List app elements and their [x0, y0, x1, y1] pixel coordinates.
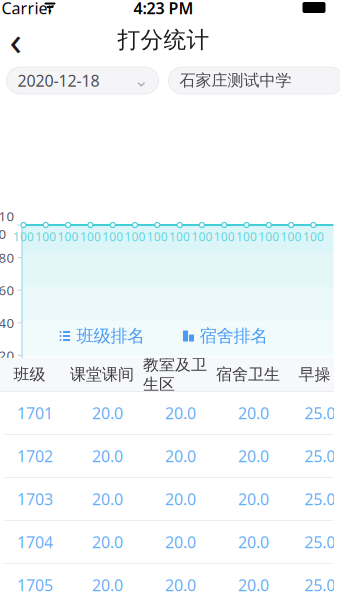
- staticText: 25.0: [304, 531, 335, 553]
- staticText: 1902: [252, 396, 273, 428]
- staticText: 25.0: [304, 488, 335, 510]
- staticText: 班级排名: [76, 325, 144, 347]
- staticText: 1804: [185, 386, 206, 418]
- staticText: 石家庄测试中学: [179, 71, 291, 90]
- staticText: 100: [13, 228, 34, 244]
- staticText: 80: [0, 249, 14, 266]
- staticText: 4:23 PM: [133, 0, 193, 19]
- staticText: 1705: [96, 386, 117, 418]
- staticText: 20.0: [238, 445, 269, 467]
- button[interactable]: 1704: [0, 521, 339, 564]
- button[interactable]: 1705: [0, 564, 339, 604]
- staticText: 100: [281, 228, 302, 244]
- staticText: 100: [258, 228, 279, 244]
- staticText: 1803: [163, 396, 184, 428]
- staticText: 1802: [141, 386, 162, 418]
- staticText: 宿舍卫生: [216, 365, 280, 384]
- staticText: 宿舍排名: [199, 325, 267, 347]
- button[interactable]: Back: [0, 20, 37, 60]
- staticText: 100: [191, 228, 212, 244]
- staticText: 1703: [52, 386, 73, 418]
- staticText: 1704: [17, 531, 53, 553]
- staticText: 课堂课间: [70, 365, 134, 384]
- button[interactable]: 1702: [0, 435, 339, 478]
- staticText: 100: [303, 228, 324, 244]
- staticText: 100: [102, 228, 123, 244]
- staticText: 100: [236, 228, 257, 244]
- staticText: 1703: [17, 488, 53, 510]
- staticText: 100: [58, 228, 79, 244]
- button[interactable]: 1703: [0, 478, 339, 521]
- staticText: 100: [80, 228, 101, 244]
- staticText: 班级: [13, 365, 45, 384]
- button[interactable]: 宿舍排名: [180, 321, 269, 351]
- staticText: 1901: [230, 386, 251, 418]
- staticText: 25.0: [304, 402, 335, 424]
- staticText: 1705: [17, 574, 53, 596]
- button[interactable]: 石家庄测试中学: [168, 67, 340, 94]
- staticText: 20.0: [165, 574, 196, 596]
- staticText: 1801: [118, 396, 139, 428]
- staticText: 1701: [7, 386, 28, 418]
- staticText: 100: [124, 228, 145, 244]
- button[interactable]: 班级排名: [57, 321, 146, 351]
- staticText: 教室及卫生区: [143, 355, 207, 394]
- staticText: 20.0: [238, 488, 269, 510]
- staticText: 2020-12-18: [17, 70, 99, 91]
- staticText: 60: [0, 281, 14, 299]
- staticText: 1702: [17, 445, 53, 467]
- staticText: ‹: [9, 13, 21, 66]
- staticText: 20.0: [92, 402, 123, 424]
- staticText: 20.0: [238, 531, 269, 553]
- staticText: 20.0: [238, 574, 269, 596]
- staticText: 100: [169, 228, 190, 244]
- staticText: 100: [214, 228, 235, 244]
- staticText: 100: [147, 228, 168, 244]
- staticText: 1904: [297, 396, 318, 428]
- staticText: 1704: [74, 396, 95, 428]
- staticText: 1903: [275, 386, 296, 418]
- staticText: 20.0: [92, 531, 123, 553]
- staticText: 25.0: [304, 574, 335, 596]
- staticText: 20.0: [92, 445, 123, 467]
- staticText: 20.0: [238, 402, 269, 424]
- staticText: 20.0: [92, 574, 123, 596]
- staticText: 20.0: [92, 488, 123, 510]
- staticText: 100: [0, 207, 14, 243]
- staticText: 20: [0, 346, 14, 364]
- staticText: 20.0: [165, 531, 196, 553]
- staticText: 100: [35, 228, 56, 244]
- staticText: 0: [6, 379, 14, 397]
- staticText: 25.0: [304, 445, 335, 467]
- staticText: ⌄: [134, 71, 149, 90]
- staticText: 1702: [29, 396, 50, 428]
- staticText: Carrier: [1, 0, 54, 19]
- staticText: 20.0: [165, 445, 196, 467]
- staticText: 40: [0, 314, 14, 332]
- button[interactable]: 2020-12-18: [6, 67, 158, 94]
- staticText: 20.0: [165, 402, 196, 424]
- button[interactable]: 1701: [0, 392, 339, 435]
- staticText: 早操: [298, 365, 330, 384]
- staticText: 20.0: [165, 488, 196, 510]
- staticText: 1701: [17, 402, 53, 424]
- staticText: 打分统计: [117, 26, 209, 54]
